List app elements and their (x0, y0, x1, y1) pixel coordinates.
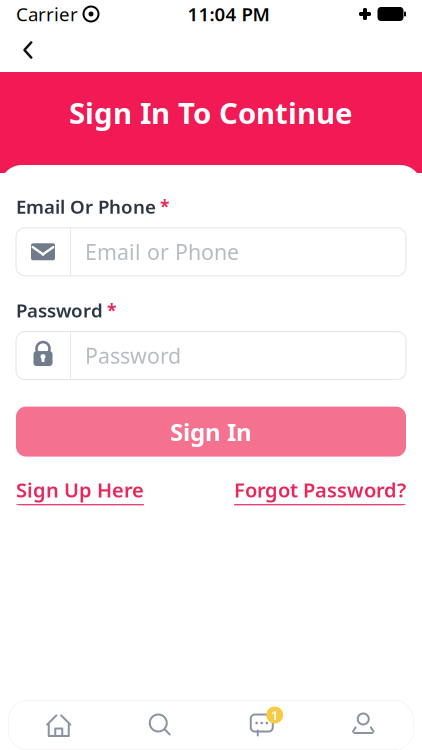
button[interactable]: Messages, 1 unread (211, 700, 312, 750)
staticText: Password (16, 298, 103, 323)
button[interactable]: Home (8, 700, 109, 750)
button[interactable]: Forgot Password? (234, 477, 406, 505)
button[interactable]: Sign In (16, 407, 406, 457)
staticText: 11:04 PM (187, 2, 269, 26)
staticText: * (107, 299, 116, 322)
staticText: Sign In To Continue (69, 93, 353, 132)
staticText: Email or Phone (85, 238, 239, 266)
staticText: 1 (271, 706, 279, 724)
button[interactable]: Profile (312, 700, 414, 750)
button[interactable]: Back (6, 28, 50, 72)
staticText: * (160, 195, 169, 218)
staticText: Forgot Password? (234, 477, 406, 503)
staticText: Password (85, 341, 181, 370)
staticText: Email Or Phone (16, 194, 156, 219)
button[interactable]: Sign Up Here (16, 477, 144, 505)
staticText: Carrier (16, 2, 78, 26)
button[interactable]: Search (109, 700, 211, 750)
staticText: Sign Up Here (16, 477, 144, 503)
staticText: Sign In (170, 416, 252, 447)
